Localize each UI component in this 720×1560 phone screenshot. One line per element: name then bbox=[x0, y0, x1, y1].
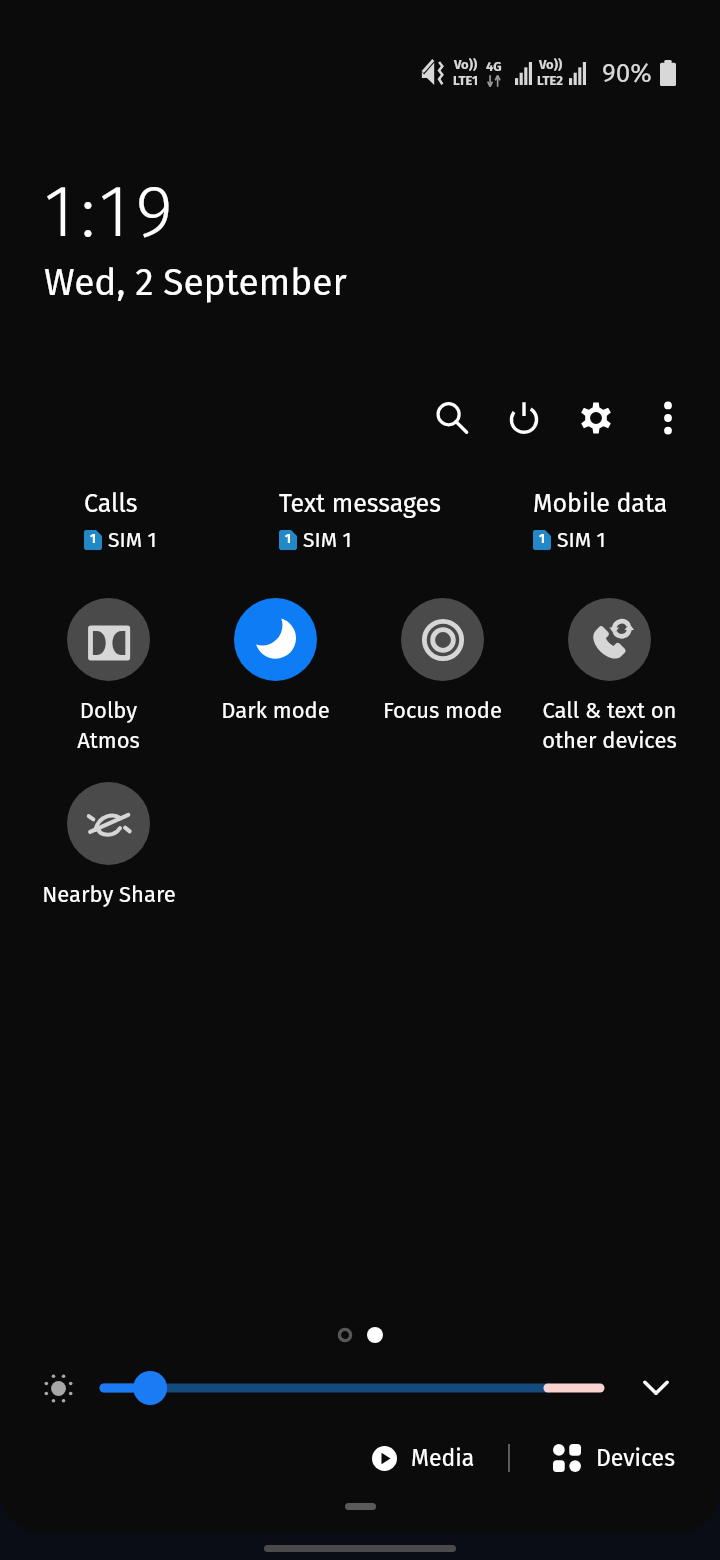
staticText: Text messages bbox=[279, 489, 441, 519]
button[interactable]: Expand brightness controls bbox=[631, 1363, 681, 1413]
button[interactable]: Focus mode bbox=[359, 598, 526, 723]
staticText: 90% bbox=[602, 58, 652, 89]
button[interactable]: Power off bbox=[488, 390, 560, 446]
staticText: Mobile data bbox=[533, 489, 668, 519]
button[interactable]: Dolby Atmos bbox=[25, 598, 192, 754]
staticText: Vo)) bbox=[539, 57, 563, 73]
button[interactable]: Call & text on other devices bbox=[526, 598, 693, 754]
staticText: Dark mode bbox=[221, 697, 330, 723]
staticText: LTE1 bbox=[453, 73, 478, 89]
button[interactable]: More options bbox=[632, 390, 704, 446]
button[interactable]: Dark mode bbox=[192, 598, 359, 723]
staticText: Media bbox=[411, 1444, 475, 1472]
staticText: Wed, 2 September bbox=[44, 260, 347, 304]
staticText: 1:19 bbox=[44, 169, 180, 255]
staticText: SIM 1 bbox=[303, 527, 352, 552]
staticText: Calls bbox=[84, 489, 138, 519]
button[interactable]: Media bbox=[372, 1436, 475, 1480]
staticText: 1 bbox=[285, 531, 292, 547]
button[interactable]: Devices bbox=[553, 1436, 675, 1480]
staticText: Devices bbox=[596, 1444, 675, 1472]
button[interactable]: Calls bbox=[84, 489, 157, 552]
staticText: SIM 1 bbox=[557, 527, 606, 552]
button[interactable]: Mobile data bbox=[533, 489, 668, 552]
staticText: Dolby Atmos bbox=[77, 697, 140, 754]
staticText: 1 bbox=[90, 531, 97, 547]
staticText: 1 bbox=[539, 531, 546, 547]
staticText: SIM 1 bbox=[108, 527, 157, 552]
button[interactable]: Text messages bbox=[279, 489, 441, 552]
button[interactable]: Settings bbox=[560, 390, 632, 446]
staticText: Call & text on other devices bbox=[542, 697, 677, 754]
button[interactable]: Search bbox=[416, 390, 488, 446]
staticText: Focus mode bbox=[383, 697, 502, 723]
staticText: Nearby Share bbox=[42, 881, 176, 907]
staticText: 4G bbox=[486, 59, 502, 75]
staticText: LTE2 bbox=[537, 73, 564, 89]
staticText: Vo)) bbox=[454, 57, 478, 73]
button[interactable]: Nearby Share bbox=[25, 782, 192, 907]
